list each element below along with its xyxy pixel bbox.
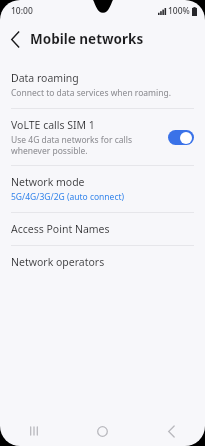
staticText: Use 4G data networks for calls whenever … <box>11 134 162 156</box>
button[interactable]: Home <box>85 416 119 446</box>
button[interactable]: Back <box>154 416 188 446</box>
staticText: Network operators <box>11 255 105 269</box>
button[interactable]: Data roaming <box>0 62 205 108</box>
staticText: VoLTE calls SIM 1 <box>11 118 95 132</box>
button[interactable]: Recent apps <box>17 416 51 446</box>
button[interactable]: Network operators <box>0 246 205 278</box>
staticText: 10:00 <box>11 5 33 17</box>
button[interactable]: VoLTE calls SIM 1 <box>0 109 205 165</box>
button[interactable]: Access Point Names <box>0 213 205 245</box>
staticText: Mobile networks <box>30 30 144 48</box>
button[interactable]: Network mode <box>0 166 205 212</box>
staticText: Access Point Names <box>11 222 110 236</box>
button[interactable]: VoLTE calls SIM 1 toggle <box>168 130 194 145</box>
staticText: 5G/4G/3G/2G (auto connect) <box>11 191 125 203</box>
staticText: 100% <box>168 5 190 17</box>
staticText: Network mode <box>11 175 85 189</box>
staticText: Connect to data services when roaming. <box>11 87 172 99</box>
button[interactable]: Navigate up <box>0 24 30 54</box>
staticText: Data roaming <box>11 71 79 85</box>
